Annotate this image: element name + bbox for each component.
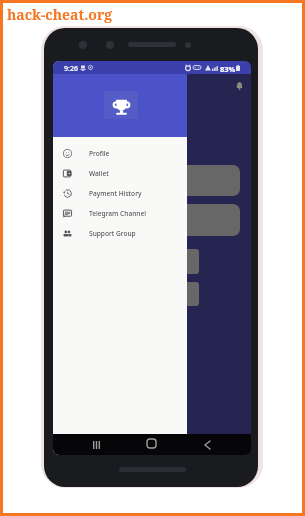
button[interactable]: Back	[191, 434, 223, 455]
staticText: hack-cheat.org	[7, 5, 113, 24]
button[interactable]: Home	[135, 434, 167, 455]
button[interactable]: Recent apps	[80, 434, 112, 455]
button[interactable]	[66, 282, 199, 306]
staticText: Payment History	[89, 189, 142, 198]
button[interactable]: Support Group	[53, 223, 187, 243]
button[interactable]: Profile	[53, 143, 187, 163]
staticText: Wallet	[89, 169, 109, 178]
staticText: Telegram Channel	[89, 209, 146, 218]
button[interactable]	[66, 249, 199, 274]
button[interactable]: Notifications	[231, 77, 247, 93]
staticText: Support Group	[89, 229, 136, 238]
button[interactable]: Telegram Channel	[53, 203, 187, 223]
button[interactable]	[66, 165, 240, 196]
button[interactable]	[66, 204, 240, 236]
button[interactable]: Wallet	[53, 163, 187, 183]
staticText: 9:26	[64, 64, 78, 74]
staticText: 83%	[220, 64, 236, 74]
button[interactable]: Payment History	[53, 183, 187, 203]
staticText: Profile	[89, 149, 110, 158]
